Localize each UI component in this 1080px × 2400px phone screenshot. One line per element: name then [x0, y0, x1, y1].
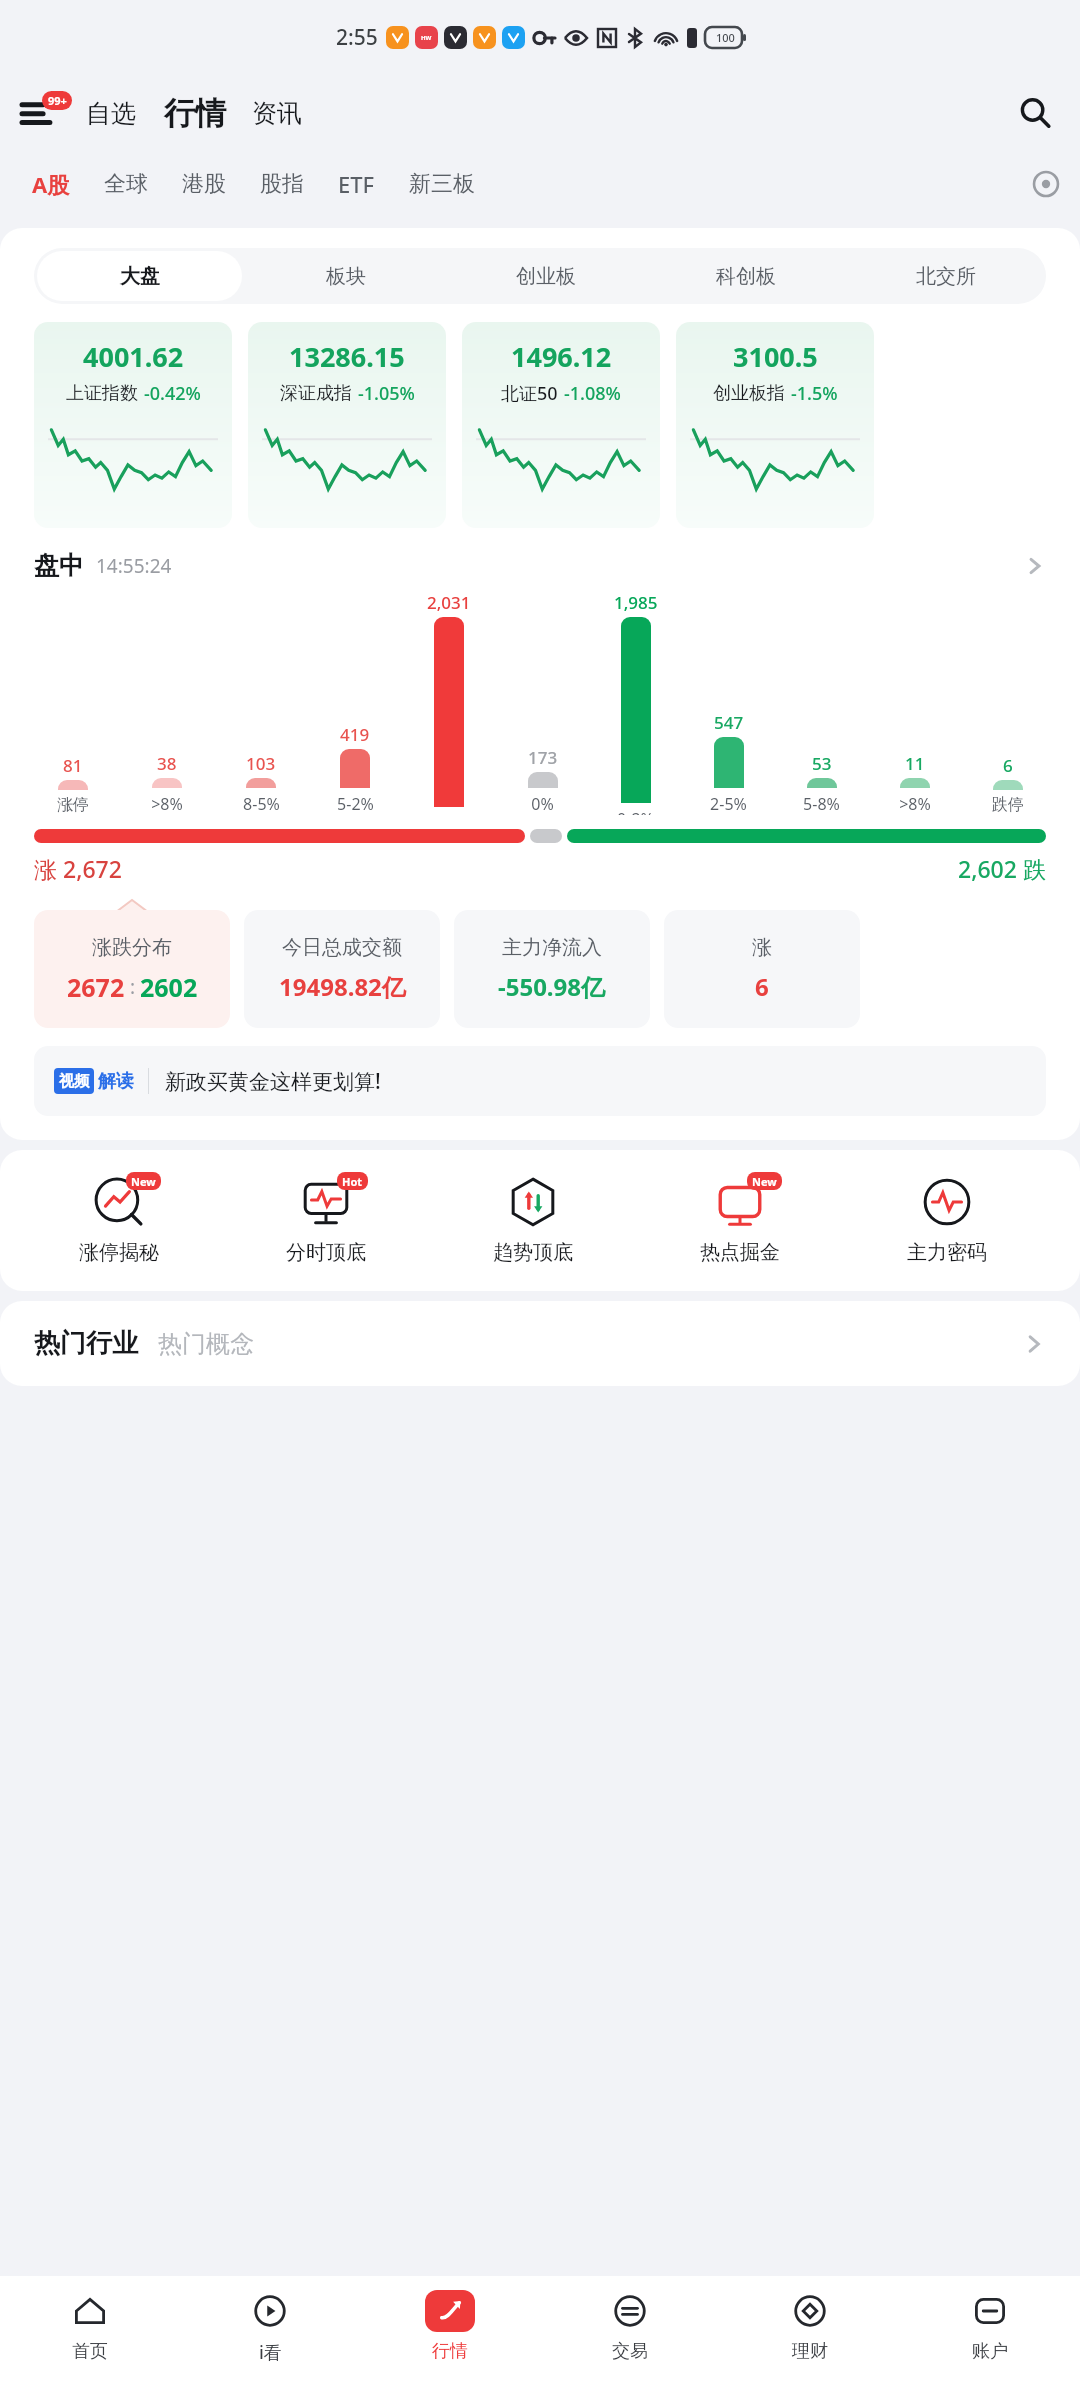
staticText: 11: [905, 752, 925, 775]
staticText: 北交所: [916, 264, 976, 289]
staticText: 视频: [59, 1072, 89, 1091]
button[interactable]: 今日总成交额: [244, 910, 440, 1028]
staticText: 股指: [260, 170, 304, 198]
button[interactable]: 港股: [176, 162, 232, 206]
button[interactable]: 主力净流入: [454, 910, 650, 1028]
button[interactable]: 趋势顶底: [429, 1176, 636, 1265]
staticText: 板块: [326, 264, 366, 289]
staticText: 419: [340, 723, 370, 746]
staticText: 81: [63, 754, 83, 777]
staticText: 2672: [67, 970, 125, 1004]
staticText: 上证指数: [66, 382, 138, 405]
staticText: 14:55:24: [96, 553, 172, 579]
button[interactable]: Menu: [22, 91, 66, 135]
button[interactable]: 科创板: [649, 251, 843, 301]
staticText: A股: [32, 169, 70, 199]
staticText: 深证成指: [280, 382, 352, 405]
button[interactable]: 4001.62: [34, 322, 232, 528]
button[interactable]: 交易: [540, 2276, 720, 2400]
staticText: 账户: [972, 2340, 1008, 2363]
staticText: 13286.15: [289, 338, 405, 375]
staticText: -0.42%: [144, 381, 201, 406]
staticText: 173: [528, 746, 558, 769]
staticText: 今日总成交额: [282, 935, 402, 960]
staticText: 0-2%: [617, 808, 654, 815]
button[interactable]: 13286.15: [248, 322, 446, 528]
staticText: 行情: [432, 2340, 468, 2363]
staticText: 跌停: [992, 795, 1024, 815]
button[interactable]: New: [16, 1176, 222, 1265]
button[interactable]: 主力密码: [843, 1176, 1050, 1265]
staticText: >8%: [151, 793, 183, 815]
staticText: 交易: [612, 2340, 648, 2363]
button[interactable]: 板块: [248, 251, 443, 301]
button[interactable]: 盘中: [34, 550, 1046, 581]
button[interactable]: 全球: [98, 162, 154, 206]
button[interactable]: Hot: [222, 1176, 429, 1265]
staticText: -550.98亿: [498, 970, 606, 1003]
staticText: 盘中: [34, 550, 84, 581]
button[interactable]: 1496.12: [462, 322, 660, 528]
button[interactable]: 3100.5: [676, 322, 874, 528]
staticText: HW: [421, 34, 432, 42]
button[interactable]: Settings: [1026, 164, 1066, 204]
button[interactable]: i看: [180, 2276, 360, 2400]
button[interactable]: ETF: [332, 161, 381, 207]
button[interactable]: 新三板: [403, 162, 481, 206]
staticText: 涨停揭秘: [79, 1240, 159, 1265]
button[interactable]: 创业板: [449, 251, 643, 301]
staticText: 1496.12: [511, 338, 612, 375]
staticText: 99+: [48, 93, 67, 108]
staticText: 热点掘金: [700, 1240, 780, 1265]
staticText: 科创板: [716, 264, 776, 289]
button[interactable]: 股指: [254, 162, 310, 206]
button[interactable]: 热门行业: [34, 1327, 1046, 1360]
button[interactable]: A股: [26, 161, 76, 207]
staticText: 涨 2,672: [34, 853, 122, 884]
button[interactable]: 自选: [82, 92, 140, 135]
button[interactable]: New: [636, 1176, 843, 1265]
staticText: 主力净流入: [502, 935, 602, 960]
staticText: 趋势顶底: [493, 1240, 573, 1265]
staticText: 1,985: [614, 591, 658, 614]
button[interactable]: 涨: [664, 910, 860, 1028]
button[interactable]: Search: [1012, 90, 1058, 136]
button[interactable]: 首页: [0, 2276, 180, 2400]
staticText: 北证50: [501, 381, 558, 406]
button[interactable]: 资讯: [248, 92, 306, 135]
staticText: 8-5%: [243, 793, 280, 815]
staticText: 涨跌分布: [92, 935, 172, 960]
staticText: 5-8%: [803, 793, 840, 815]
button[interactable]: 北交所: [849, 251, 1043, 301]
staticText: -1.5%: [791, 381, 838, 406]
button[interactable]: 行情: [160, 92, 230, 135]
staticText: >8%: [899, 793, 931, 815]
staticText: 2,602 跌: [958, 853, 1046, 884]
staticText: 创业板: [516, 264, 576, 289]
staticText: 新政买黄金这样更划算!: [165, 1067, 381, 1096]
staticText: 自选: [86, 98, 136, 129]
staticText: 首页: [72, 2340, 108, 2363]
staticText: 资讯: [252, 98, 302, 129]
staticText: 涨停: [57, 795, 89, 815]
staticText: 涨: [752, 935, 772, 960]
staticText: 2:55: [336, 23, 378, 52]
staticText: 新三板: [409, 170, 475, 198]
staticText: 分时顶底: [286, 1240, 366, 1265]
staticText: 理财: [792, 2340, 828, 2363]
staticText: 100: [716, 30, 735, 45]
staticText: 4001.62: [83, 338, 184, 375]
button[interactable]: 涨跌分布: [34, 910, 230, 1028]
button[interactable]: 理财: [720, 2276, 900, 2400]
button[interactable]: 行情: [360, 2276, 540, 2400]
button[interactable]: 视频: [34, 1046, 1046, 1116]
staticText: Hot: [342, 1174, 363, 1189]
staticText: 103: [246, 752, 276, 775]
button[interactable]: 账户: [900, 2276, 1080, 2400]
staticText: 2602: [140, 970, 198, 1004]
staticText: 全球: [104, 170, 148, 198]
button[interactable]: 大盘: [37, 251, 242, 301]
staticText: 创业板指: [713, 382, 785, 405]
staticText: 2-5%: [710, 793, 747, 815]
staticText: 热门概念: [158, 1329, 254, 1359]
